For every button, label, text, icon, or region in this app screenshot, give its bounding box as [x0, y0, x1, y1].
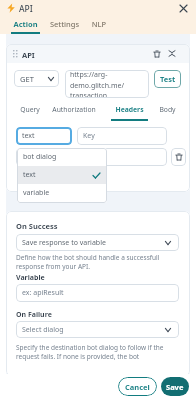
staticText: Headers	[111, 105, 148, 114]
staticText: Test	[160, 74, 176, 84]
button[interactable]: text	[17, 166, 107, 184]
button[interactable]: Delete action	[151, 48, 162, 59]
staticText: text	[22, 131, 35, 141]
staticText: Authorization	[48, 105, 100, 114]
button[interactable]: NLP	[89, 19, 109, 34]
staticText: Key	[83, 131, 95, 141]
button[interactable]: Save	[161, 377, 189, 396]
staticText: https://arg-demo.glitch.me/transaction	[70, 70, 144, 98]
staticText: variable	[23, 188, 50, 198]
staticText: bot dialog	[23, 152, 57, 162]
staticText: Variable	[16, 273, 45, 283]
staticText: ex: apiResult	[22, 288, 64, 298]
button[interactable]: Test	[154, 70, 181, 88]
button[interactable]: Collapse	[166, 48, 177, 59]
button[interactable]: bot dialog	[17, 148, 107, 166]
staticText: Action	[11, 19, 40, 29]
staticText: Query	[19, 105, 41, 114]
button[interactable]: Settings	[48, 19, 81, 34]
button[interactable]: Close	[176, 1, 190, 15]
staticText: Save response to variable	[22, 238, 106, 248]
staticText: GET	[20, 74, 34, 84]
button[interactable]: Action	[11, 19, 40, 34]
staticText: Save	[166, 382, 184, 392]
staticText: Select dialog	[22, 325, 64, 335]
button[interactable]: Select dialog	[16, 321, 179, 338]
button[interactable]: GET	[14, 70, 59, 87]
button[interactable]: Save response to variable	[16, 234, 179, 251]
staticText: Cancel	[125, 382, 150, 392]
button[interactable]: Headers	[111, 104, 148, 121]
staticText: On Success	[16, 221, 58, 231]
button[interactable]	[16, 148, 167, 166]
button[interactable]: variable	[17, 184, 107, 202]
button[interactable]: Authorization	[48, 104, 100, 121]
button[interactable]: text	[16, 127, 72, 145]
staticText: On Failure	[16, 310, 52, 320]
button[interactable]: Cancel	[118, 377, 157, 396]
button[interactable]: ex: apiResult	[16, 284, 179, 302]
staticText: NLP	[89, 19, 109, 29]
button[interactable]: Remove header	[171, 148, 186, 166]
button[interactable]: Body	[156, 104, 179, 121]
button[interactable]: Key	[77, 127, 167, 145]
staticText: API	[19, 3, 33, 15]
staticText: text	[23, 170, 36, 180]
button[interactable]: Query	[19, 104, 41, 121]
staticText: Specify the destination bot dialog to fo…	[16, 343, 181, 361]
staticText: Body	[156, 105, 179, 114]
staticText: Settings	[48, 19, 81, 29]
button[interactable]: https://arg-demo.glitch.me/transaction	[65, 70, 149, 98]
staticText: Define how the bot should handle a succe…	[16, 253, 176, 271]
staticText: API	[22, 50, 35, 60]
